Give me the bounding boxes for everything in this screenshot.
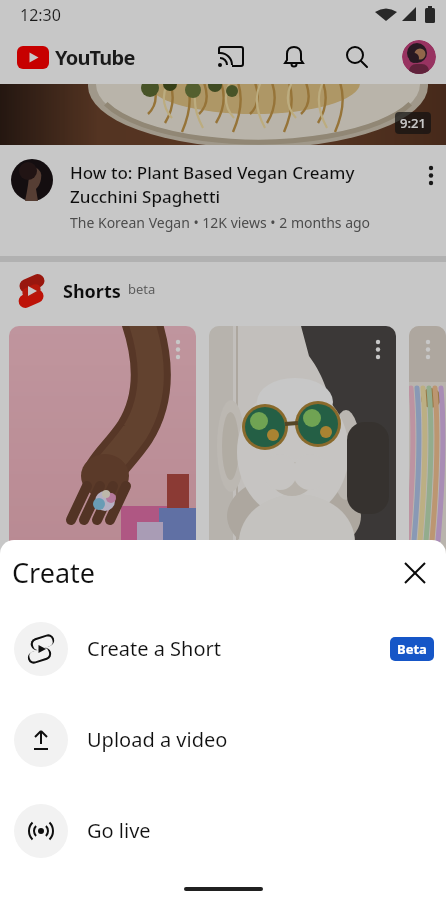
staticText: Create a Short (87, 635, 222, 662)
button[interactable] (400, 558, 430, 588)
button[interactable] (344, 44, 370, 70)
staticText: Beta (397, 640, 427, 658)
staticText: 9:21 (400, 114, 426, 132)
button[interactable] (402, 40, 436, 74)
button[interactable]: 9:21 (0, 84, 446, 145)
button[interactable] (416, 159, 446, 199)
button[interactable] (218, 44, 244, 70)
staticText: Create (12, 554, 96, 591)
button[interactable]: How to: Plant Based Vegan Creamy Zucchin… (0, 145, 446, 256)
staticText: Upload a video (87, 726, 228, 753)
button[interactable] (409, 326, 446, 899)
staticText: Shorts (63, 279, 121, 304)
staticText: beta (128, 280, 156, 298)
button[interactable]: Upload a video (0, 694, 446, 785)
button[interactable]: YouTube (17, 44, 135, 71)
staticText: Go live (87, 817, 151, 844)
button[interactable]: Create a Short (0, 603, 446, 694)
button[interactable] (9, 326, 196, 899)
button[interactable] (281, 44, 307, 70)
button[interactable] (209, 326, 396, 899)
button[interactable]: Go live (0, 785, 446, 876)
staticText: How to: Plant Based Vegan Creamy Zucchin… (70, 161, 355, 208)
staticText: The Korean Vegan • 12K views • 2 months … (70, 213, 371, 232)
staticText: 12:30 (20, 4, 61, 26)
staticText: YouTube (55, 44, 135, 71)
